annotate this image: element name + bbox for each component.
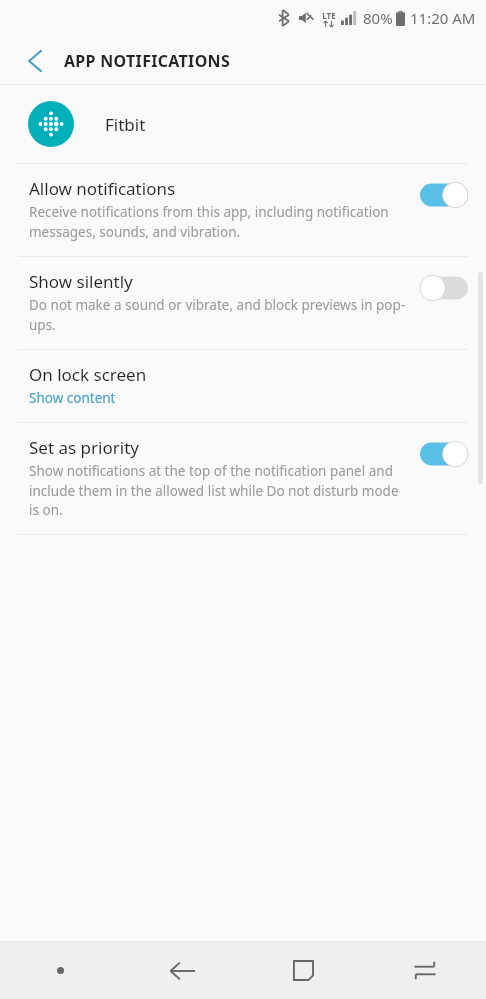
staticText: 11:20 AM — [410, 8, 476, 28]
staticText: Show silently — [29, 270, 133, 293]
button[interactable]: Home — [242, 942, 364, 999]
button[interactable]: Menu indicator — [0, 942, 121, 999]
staticText: Set as priority — [29, 436, 139, 459]
button[interactable]: Set as priority — [0, 423, 486, 534]
staticText: Allow notifications — [29, 177, 176, 200]
staticText: Show notifications at the top of the not… — [29, 462, 406, 519]
staticText: Show content — [29, 389, 116, 407]
button[interactable]: On lock screen — [0, 350, 486, 422]
staticText: Receive notifications from this app, inc… — [29, 203, 406, 241]
staticText: LTE — [322, 10, 336, 21]
staticText: Fitbit — [105, 113, 146, 136]
button[interactable]: Toggle on — [420, 182, 468, 208]
button[interactable]: Toggle off — [420, 275, 468, 301]
button[interactable]: Allow notifications — [0, 164, 486, 256]
staticText: 80% — [363, 8, 393, 28]
staticText: Do not make a sound or vibrate, and bloc… — [29, 296, 406, 334]
button[interactable]: Recents — [364, 942, 486, 999]
button[interactable]: Back — [121, 942, 242, 999]
button[interactable]: Back — [12, 39, 56, 83]
staticText: On lock screen — [29, 363, 147, 386]
staticText: APP NOTIFICATIONS — [64, 50, 231, 72]
button[interactable]: Show silently — [0, 257, 486, 349]
button[interactable]: Toggle on — [420, 441, 468, 467]
button[interactable]: Fitbit — [0, 85, 486, 163]
